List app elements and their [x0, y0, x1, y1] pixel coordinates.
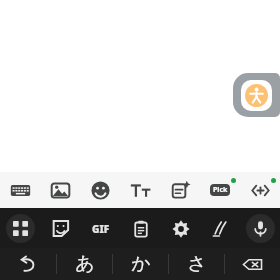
- button[interactable]: Pick: [200, 172, 240, 208]
- button[interactable]: あ: [57, 248, 112, 280]
- staticText: か: [131, 252, 151, 276]
- button[interactable]: Backspace: [225, 248, 280, 280]
- button[interactable]: GIF: [80, 208, 120, 248]
- button[interactable]: Emoji: [80, 172, 120, 208]
- button[interactable]: Clipboard: [120, 208, 160, 248]
- button[interactable]: Insert code: [240, 172, 280, 208]
- button[interactable]: Image: [40, 172, 80, 208]
- button[interactable]: Handwriting: [200, 208, 240, 248]
- button[interactable]: Keyboard: [0, 172, 40, 208]
- staticText: あ: [75, 252, 95, 276]
- button[interactable]: Voice input: [240, 208, 280, 248]
- button[interactable]: Apps: [0, 208, 40, 248]
- staticText: GIF: [92, 222, 110, 236]
- button[interactable]: か: [113, 248, 168, 280]
- button[interactable]: Accessibility menu: [233, 73, 280, 117]
- button[interactable]: Stickers: [40, 208, 80, 248]
- button[interactable]: Undo: [0, 248, 56, 280]
- staticText: Pick: [213, 185, 228, 195]
- button[interactable]: Smart compose: [160, 172, 200, 208]
- button[interactable]: Settings: [160, 208, 200, 248]
- staticText: さ: [187, 252, 207, 276]
- button[interactable]: Text formatting: [120, 172, 160, 208]
- button[interactable]: さ: [169, 248, 224, 280]
